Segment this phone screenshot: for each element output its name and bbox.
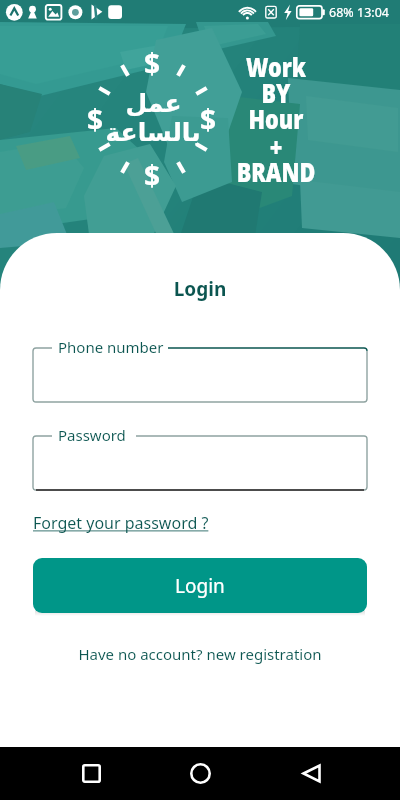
staticText: $	[195, 100, 221, 138]
staticText: BRAND	[215, 153, 337, 190]
staticText: BY	[215, 74, 337, 111]
staticText: 68%	[329, 4, 354, 21]
button[interactable]: Back	[289, 751, 333, 795]
staticText: Password	[58, 425, 126, 445]
button[interactable]: Password	[33, 428, 367, 490]
button[interactable]: Recents	[69, 751, 113, 795]
staticText: Work	[215, 48, 337, 85]
staticText: Login	[0, 276, 400, 302]
staticText: $	[139, 156, 165, 194]
button[interactable]: Home	[178, 751, 222, 795]
staticText: +	[215, 128, 337, 165]
staticText: $	[139, 44, 165, 82]
button[interactable]: Have no account? new registration	[0, 644, 400, 664]
staticText: عمل	[125, 89, 182, 118]
staticText: Phone number	[58, 337, 164, 357]
button[interactable]: Phone number	[33, 340, 367, 402]
staticText: $	[82, 100, 108, 138]
staticText: بالساعة	[105, 118, 201, 147]
staticText: Login	[175, 573, 225, 599]
button[interactable]: Login	[33, 558, 367, 613]
staticText: 13:04	[357, 4, 389, 21]
staticText: Hour	[215, 100, 337, 137]
button[interactable]: Forget your password ?	[33, 512, 209, 534]
